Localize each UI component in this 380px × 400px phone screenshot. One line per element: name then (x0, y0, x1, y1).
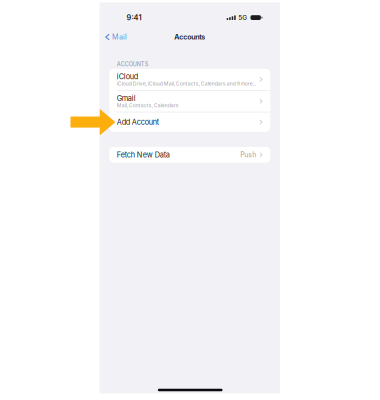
staticText: Fetch New Data (117, 150, 170, 159)
button[interactable]: Gmail (109, 91, 270, 112)
button[interactable]: Fetch New Data (109, 147, 270, 163)
staticText: Mail (112, 33, 127, 41)
button[interactable]: Add Account (109, 112, 270, 132)
staticText: Mail, Contacts, Calendars (117, 102, 179, 108)
button[interactable]: Mail (105, 30, 130, 44)
staticText: Gmail (117, 94, 136, 103)
staticText: iCloud Drive, iCloud Mail, Contacts, Cal… (117, 81, 256, 87)
staticText: ACCOUNTS (117, 61, 149, 67)
staticText: Add Account (117, 118, 159, 127)
staticText: 9:41 (126, 13, 141, 22)
staticText: Push (240, 151, 256, 159)
staticText: iCloud (117, 72, 138, 81)
staticText: Accounts (174, 33, 205, 41)
button[interactable]: iCloud (109, 69, 270, 90)
staticText: 5G (238, 14, 247, 21)
